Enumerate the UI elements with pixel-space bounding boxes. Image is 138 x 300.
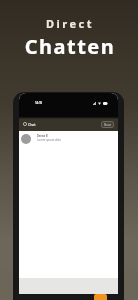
staticText: Denise B bbox=[37, 134, 48, 137]
other: Chats bbox=[23, 122, 27, 126]
staticText: Chat bbox=[28, 122, 36, 127]
staticText: Lorem ipsum dolo bbox=[37, 138, 61, 142]
button[interactable]: Neue bbox=[101, 121, 114, 128]
button[interactable]: New chat bbox=[94, 294, 107, 300]
staticText: Chatten bbox=[1, 33, 138, 60]
staticText: 14:16 bbox=[35, 101, 43, 105]
button[interactable]: Denise B bbox=[19, 132, 118, 146]
staticText: Direct bbox=[1, 16, 138, 31]
staticText: Neue bbox=[104, 123, 112, 127]
